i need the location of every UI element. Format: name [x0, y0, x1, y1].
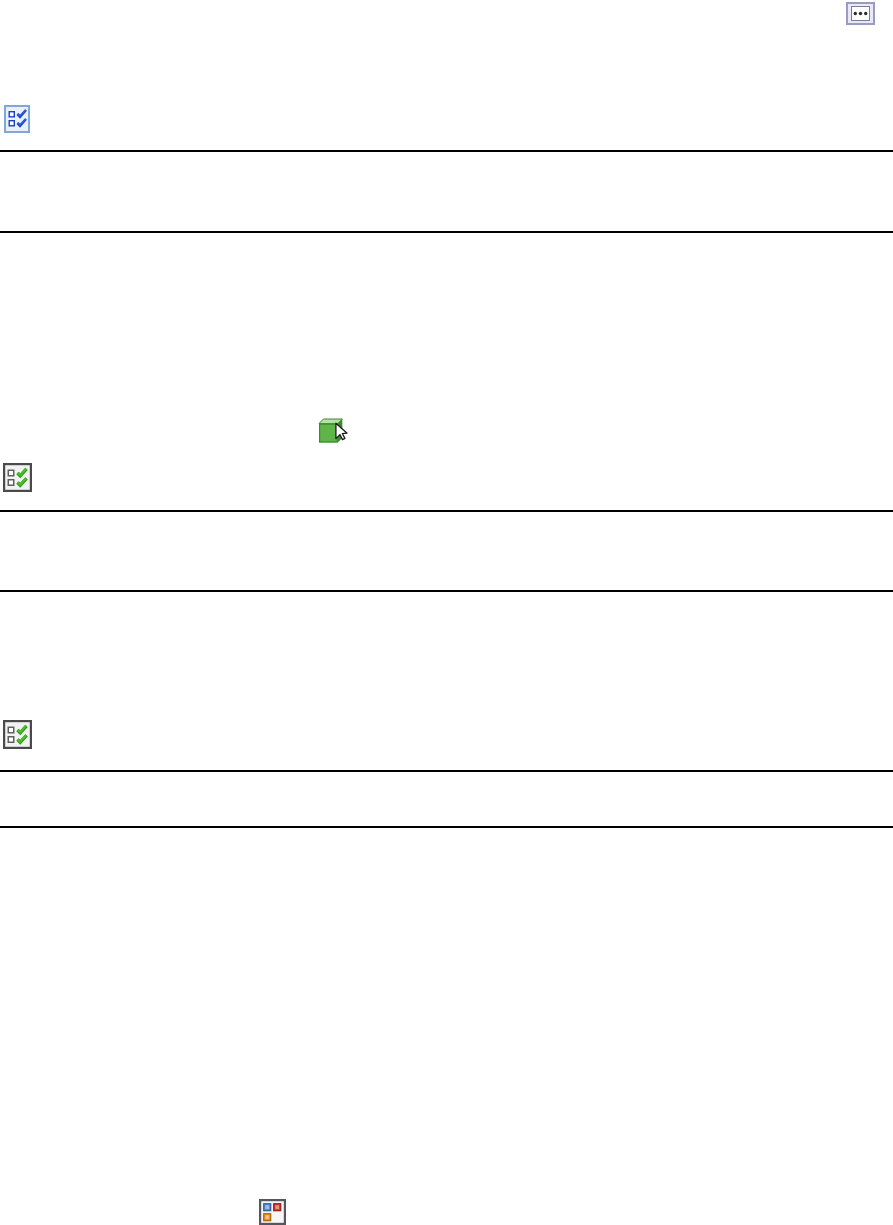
- button[interactable]: Checklist: [4, 105, 30, 133]
- button[interactable]: Checklist: [3, 720, 32, 749]
- button[interactable]: More options: [846, 2, 875, 25]
- button[interactable]: Select object: [318, 417, 350, 445]
- button[interactable]: Layout: [259, 1199, 286, 1225]
- button[interactable]: Checklist: [3, 463, 32, 492]
